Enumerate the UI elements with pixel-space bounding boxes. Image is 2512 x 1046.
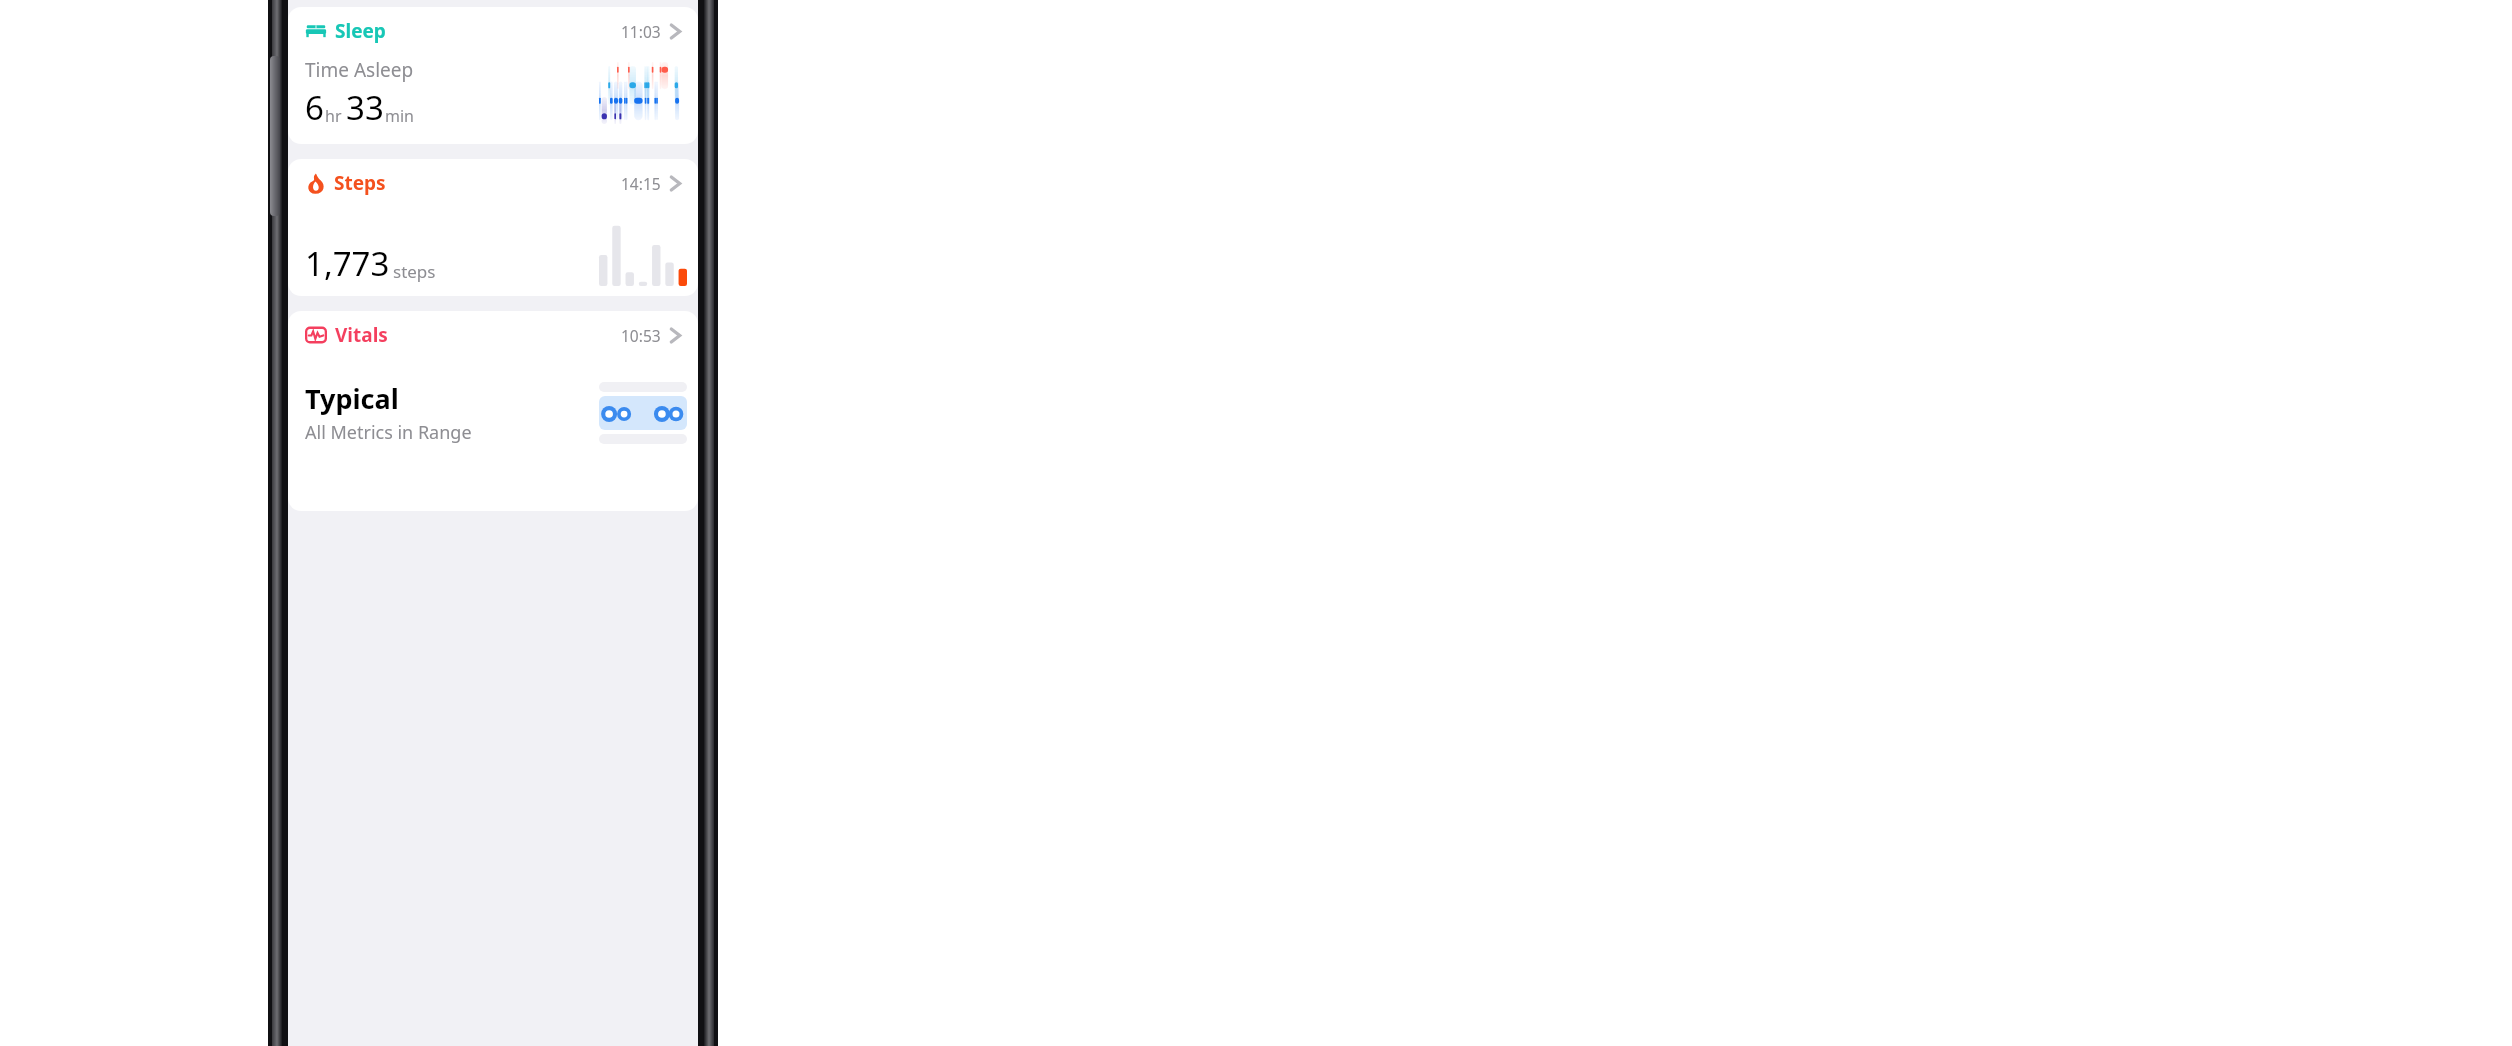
button[interactable]: Vitals bbox=[288, 311, 698, 511]
staticText: 1,773 bbox=[305, 241, 390, 286]
staticText: All Metrics in Range bbox=[305, 420, 472, 445]
staticText: steps bbox=[393, 260, 436, 283]
staticText: 14:15 bbox=[621, 173, 661, 194]
staticText: Steps bbox=[334, 170, 386, 196]
button[interactable]: Sleep bbox=[288, 7, 698, 48]
button[interactable]: Sleep bbox=[288, 7, 698, 144]
staticText: 6 bbox=[305, 85, 324, 130]
staticText: hr bbox=[325, 105, 342, 127]
staticText: min bbox=[385, 105, 414, 127]
staticText: 33 bbox=[346, 85, 384, 130]
staticText: 10:53 bbox=[621, 325, 661, 346]
button[interactable]: Vitals bbox=[288, 311, 698, 352]
staticText: Sleep bbox=[335, 18, 386, 44]
button[interactable]: Steps bbox=[288, 159, 698, 296]
staticText: Vitals bbox=[335, 322, 388, 348]
button[interactable]: Steps bbox=[288, 159, 698, 200]
staticText: Time Asleep bbox=[305, 57, 414, 83]
staticText: Typical bbox=[305, 380, 399, 417]
staticText: 11:03 bbox=[621, 21, 661, 42]
